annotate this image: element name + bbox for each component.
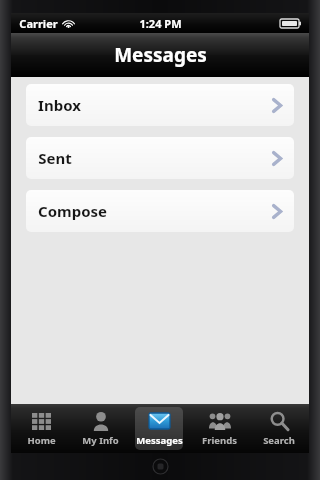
staticText: Inbox [38, 95, 81, 115]
button[interactable]: My Info [70, 404, 129, 453]
button[interactable]: Compose [26, 190, 294, 232]
button[interactable]: Home [11, 404, 70, 453]
other: My Info [92, 412, 110, 431]
other: Search [270, 412, 289, 431]
button[interactable]: Search [249, 404, 309, 453]
button[interactable]: Inbox [26, 84, 294, 126]
staticText: Carrier [19, 16, 58, 31]
button[interactable]: Messages [129, 404, 189, 453]
staticText: Messages [114, 42, 207, 68]
staticText: Friends [202, 434, 237, 447]
other: Friends [209, 412, 231, 430]
button[interactable]: Sent [26, 137, 294, 179]
staticText: 1:24 PM [139, 16, 182, 31]
other: Home [32, 413, 51, 430]
staticText: Search [263, 434, 295, 447]
staticText: Messages [136, 434, 183, 447]
staticText: My Info [82, 434, 119, 447]
staticText: Home [27, 434, 56, 447]
staticText: Compose [38, 201, 107, 221]
other: Messages [149, 413, 170, 429]
staticText: Sent [38, 148, 72, 168]
button[interactable]: Friends [189, 404, 249, 453]
